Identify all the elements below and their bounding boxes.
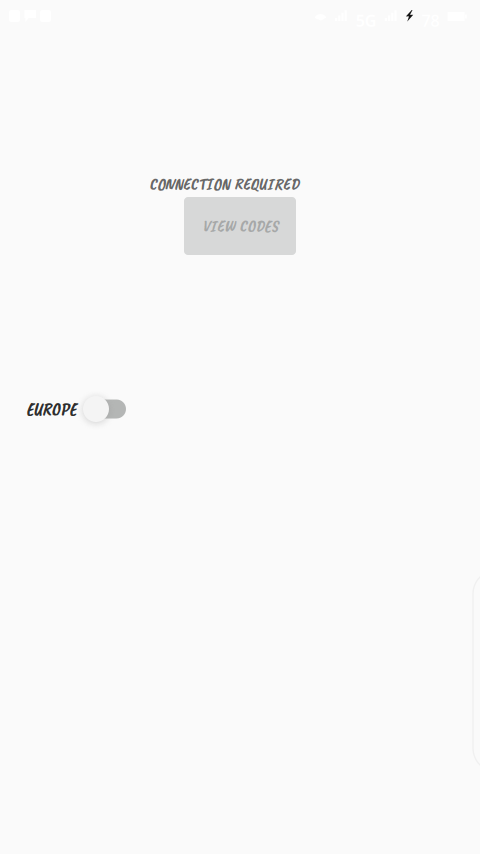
button[interactable]: VIEW CODES: [184, 197, 296, 255]
staticText: CONNECTION REQUIRED: [149, 173, 299, 195]
button[interactable]: EUROPE: [26, 392, 186, 426]
staticText: EUROPE: [26, 397, 76, 421]
staticText: VIEW CODES: [202, 215, 278, 237]
